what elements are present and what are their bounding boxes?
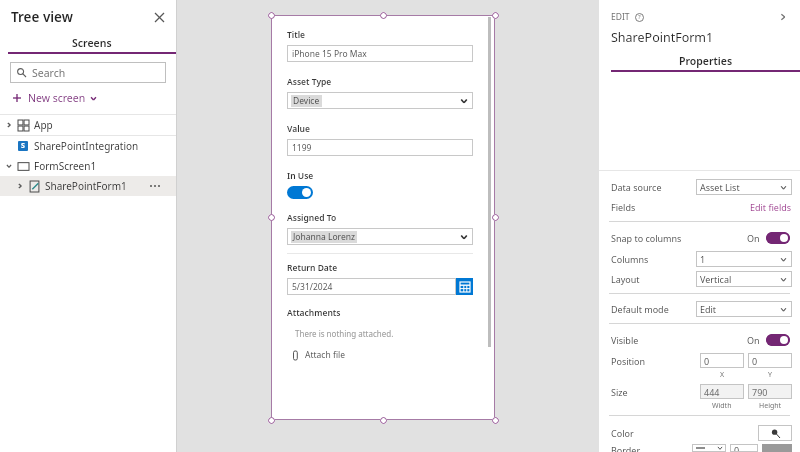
staticText: Properties xyxy=(679,54,733,68)
staticText: On xyxy=(747,232,760,244)
staticText: Asset Type xyxy=(287,76,332,88)
button[interactable]: Snap to columns xyxy=(611,227,790,249)
button[interactable]: Device xyxy=(287,92,473,109)
staticText: 0 xyxy=(704,355,710,367)
staticText: Tree view xyxy=(11,8,73,26)
staticText: 0 xyxy=(752,355,758,367)
staticText: Position xyxy=(611,355,646,367)
staticText: Data source xyxy=(611,181,662,193)
staticText: Color xyxy=(611,427,634,439)
button[interactable]: Border xyxy=(611,444,792,452)
staticText: Width xyxy=(712,401,732,411)
staticText: Columns xyxy=(611,253,649,265)
staticText: 1 xyxy=(700,253,706,265)
button[interactable]: Data source xyxy=(611,177,792,197)
staticText: Default mode xyxy=(611,303,669,315)
staticText: iPhone 15 Pro Max xyxy=(292,48,367,60)
staticText: Attach file xyxy=(305,349,345,361)
button[interactable]: 0 xyxy=(700,353,744,368)
staticText: Return Date xyxy=(287,262,338,274)
staticText: Attachments xyxy=(287,307,341,319)
staticText: Title xyxy=(287,29,306,41)
staticText: Screens xyxy=(72,36,112,50)
button[interactable]: Open date picker xyxy=(456,278,473,295)
staticText: New screen xyxy=(28,91,86,105)
button[interactable]: Screens xyxy=(8,34,176,54)
staticText: FormScreen1 xyxy=(34,159,97,173)
button[interactable]: iPhone 15 Pro Max xyxy=(287,45,473,62)
staticText: 444 xyxy=(704,386,720,398)
staticText: Asset List xyxy=(700,181,740,193)
staticText: Assigned To xyxy=(287,212,337,224)
button[interactable]: Color xyxy=(611,422,792,444)
button[interactable]: Collapse panel xyxy=(774,8,792,26)
button[interactable]: Close tree view xyxy=(148,6,170,28)
staticText: There is nothing attached. xyxy=(295,328,394,339)
button[interactable]: Search xyxy=(10,62,166,83)
button[interactable]: Properties xyxy=(611,52,800,72)
button[interactable]: Help xyxy=(634,12,644,22)
staticText: Border xyxy=(611,444,641,452)
staticText: Visible xyxy=(611,334,639,346)
staticText: Size xyxy=(611,386,628,398)
staticText: SharePointForm1 xyxy=(611,29,714,46)
staticText: Johanna Lorenz xyxy=(293,231,355,243)
staticText: Layout xyxy=(611,273,640,285)
button[interactable]: In Use toggle, on xyxy=(287,186,313,199)
staticText: Vertical xyxy=(700,273,732,285)
button[interactable]: 5/31/2024 xyxy=(287,278,473,295)
staticText: 1199 xyxy=(292,142,312,154)
button[interactable]: S xyxy=(0,136,176,156)
other: Fill color xyxy=(758,425,792,441)
button[interactable]: FormScreen1 xyxy=(0,156,176,176)
button[interactable]: Attach file xyxy=(291,349,345,361)
staticText: Edit xyxy=(700,303,717,315)
button[interactable]: 0 xyxy=(748,353,792,368)
button[interactable]: App xyxy=(0,115,176,135)
staticText: Search xyxy=(32,66,66,80)
button[interactable]: Layout xyxy=(611,269,792,289)
staticText: Fields xyxy=(611,201,636,213)
button[interactable]: SharePointForm1 xyxy=(0,176,176,196)
button[interactable]: 790 xyxy=(748,384,792,399)
staticText: S xyxy=(21,141,25,151)
button[interactable]: Fields xyxy=(611,197,792,217)
staticText: App xyxy=(34,118,53,132)
staticText: SharePointForm1 xyxy=(45,179,127,193)
staticText: Y xyxy=(768,370,772,380)
button[interactable]: Default mode xyxy=(611,299,792,319)
staticText: SharePointIntegration xyxy=(34,139,139,153)
button[interactable]: Columns xyxy=(611,249,792,269)
staticText: X xyxy=(720,370,725,380)
staticText: Height xyxy=(759,401,782,411)
button[interactable]: Visible xyxy=(611,329,790,351)
staticText: 5/31/2024 xyxy=(292,281,333,293)
staticText: Edit fields xyxy=(750,201,792,213)
staticText: ? xyxy=(638,13,641,21)
button[interactable]: Johanna Lorenz xyxy=(287,228,473,245)
staticText: EDIT xyxy=(611,11,630,23)
staticText: In Use xyxy=(287,170,314,182)
staticText: On xyxy=(747,334,760,346)
staticText: 790 xyxy=(752,386,768,398)
staticText: Snap to columns xyxy=(611,232,682,244)
button[interactable]: New screen xyxy=(12,88,176,108)
button[interactable]: More options xyxy=(150,185,160,187)
button[interactable]: 444 xyxy=(700,384,744,399)
button[interactable]: 1199 xyxy=(287,139,473,156)
staticText: 0 xyxy=(734,444,740,452)
staticText: Value xyxy=(287,123,310,135)
staticText: Device xyxy=(293,95,320,107)
